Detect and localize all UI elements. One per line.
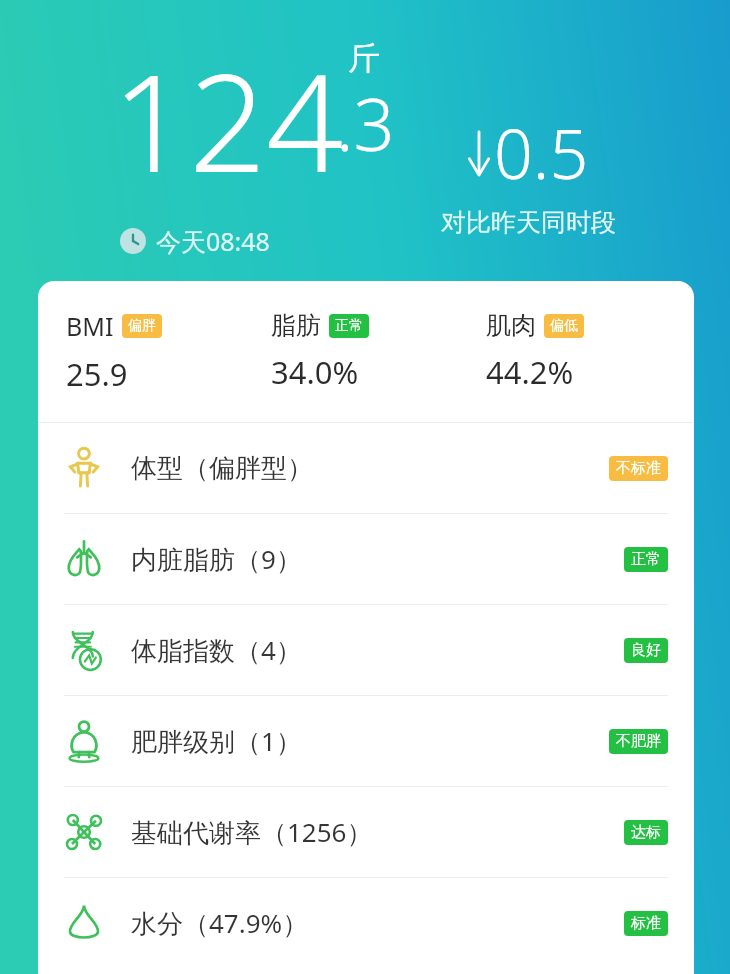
button[interactable]: 体型（偏胖型） [38,423,694,513]
staticText: 良好 [631,641,661,660]
staticText: BMI [66,309,114,343]
button[interactable]: 内脏脂肪（9） [38,514,694,604]
button[interactable]: 基础代谢率（1256） [38,787,694,877]
staticText: 正常 [631,550,661,569]
button[interactable]: 肥胖级别（1） [38,696,694,786]
staticText: 44.2% [486,351,574,393]
staticText: 肌肉 [486,310,536,341]
staticText: 34.0% [271,351,359,393]
staticText: 体脂指数（4） [131,632,302,668]
staticText: 0.5 [494,106,589,199]
staticText: 不肥胖 [616,732,661,751]
staticText: 基础代谢率（1256） [131,814,373,850]
staticText: 25.9 [66,353,128,395]
staticText: 肥胖级别（1） [131,723,302,759]
staticText: 达标 [631,823,661,842]
staticText: 124 [112,28,344,212]
staticText: 偏低 [550,317,578,335]
button[interactable]: 体脂指数（4） [38,605,694,695]
staticText: 斤 [348,38,380,78]
staticText: 正常 [335,317,363,335]
staticText: 偏胖 [128,317,156,335]
staticText: .3 [336,74,395,172]
staticText: 对比昨天同时段 [441,207,616,238]
staticText: 标准 [631,914,661,933]
staticText: 不标准 [616,459,661,478]
staticText: 内脏脂肪（9） [131,541,302,577]
button[interactable]: 水分（47.9%） [38,878,694,968]
staticText: 水分（47.9%） [131,905,309,941]
staticText: 脂肪 [271,310,321,341]
staticText: 体型（偏胖型） [131,452,313,485]
staticText: 今天08:48 [156,224,270,258]
